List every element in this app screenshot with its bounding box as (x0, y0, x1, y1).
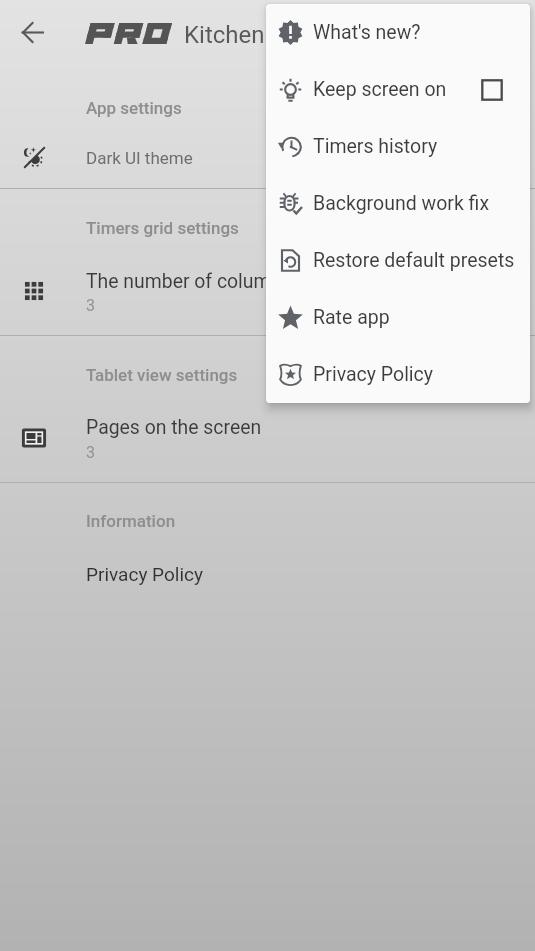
staticText: Privacy Policy (313, 363, 434, 386)
staticText: Timers history (313, 135, 438, 158)
staticText: Keep screen on (313, 78, 447, 101)
button[interactable]: Pages on the screen (0, 397, 535, 476)
button[interactable]: Back (0, 0, 64, 64)
button[interactable]: Privacy Policy (266, 346, 530, 403)
staticText: 3 (86, 296, 95, 315)
staticText: Restore default presets (313, 249, 515, 272)
staticText: App settings (86, 98, 182, 118)
button[interactable]: Rate app (266, 289, 530, 346)
staticText: Privacy Policy (86, 563, 203, 585)
staticText: Dark UI theme (86, 148, 193, 168)
button[interactable]: The number of columns (0, 251, 535, 329)
staticText: Kitchen Timers (184, 21, 345, 49)
button[interactable]: Keep screen on (266, 61, 530, 118)
button[interactable]: Restore default presets (266, 232, 530, 289)
staticText: Background work fix (313, 192, 490, 215)
staticText: What's new? (313, 21, 421, 44)
button[interactable]: Privacy Policy (0, 548, 535, 600)
staticText: The number of columns (86, 270, 292, 293)
button[interactable]: Timers history (266, 118, 530, 175)
button[interactable]: Dark UI theme (0, 132, 535, 184)
button[interactable]: What's new? (266, 4, 530, 61)
staticText: Pages on the screen (86, 416, 262, 439)
staticText: Timers grid settings (86, 218, 239, 238)
staticText: Information (86, 511, 176, 531)
button[interactable]: Close menu (0, 610, 535, 951)
staticText: 3 (86, 443, 95, 462)
staticText: Rate app (313, 306, 390, 329)
staticText: Tablet view settings (86, 365, 238, 385)
button[interactable]: Background work fix (266, 175, 530, 232)
